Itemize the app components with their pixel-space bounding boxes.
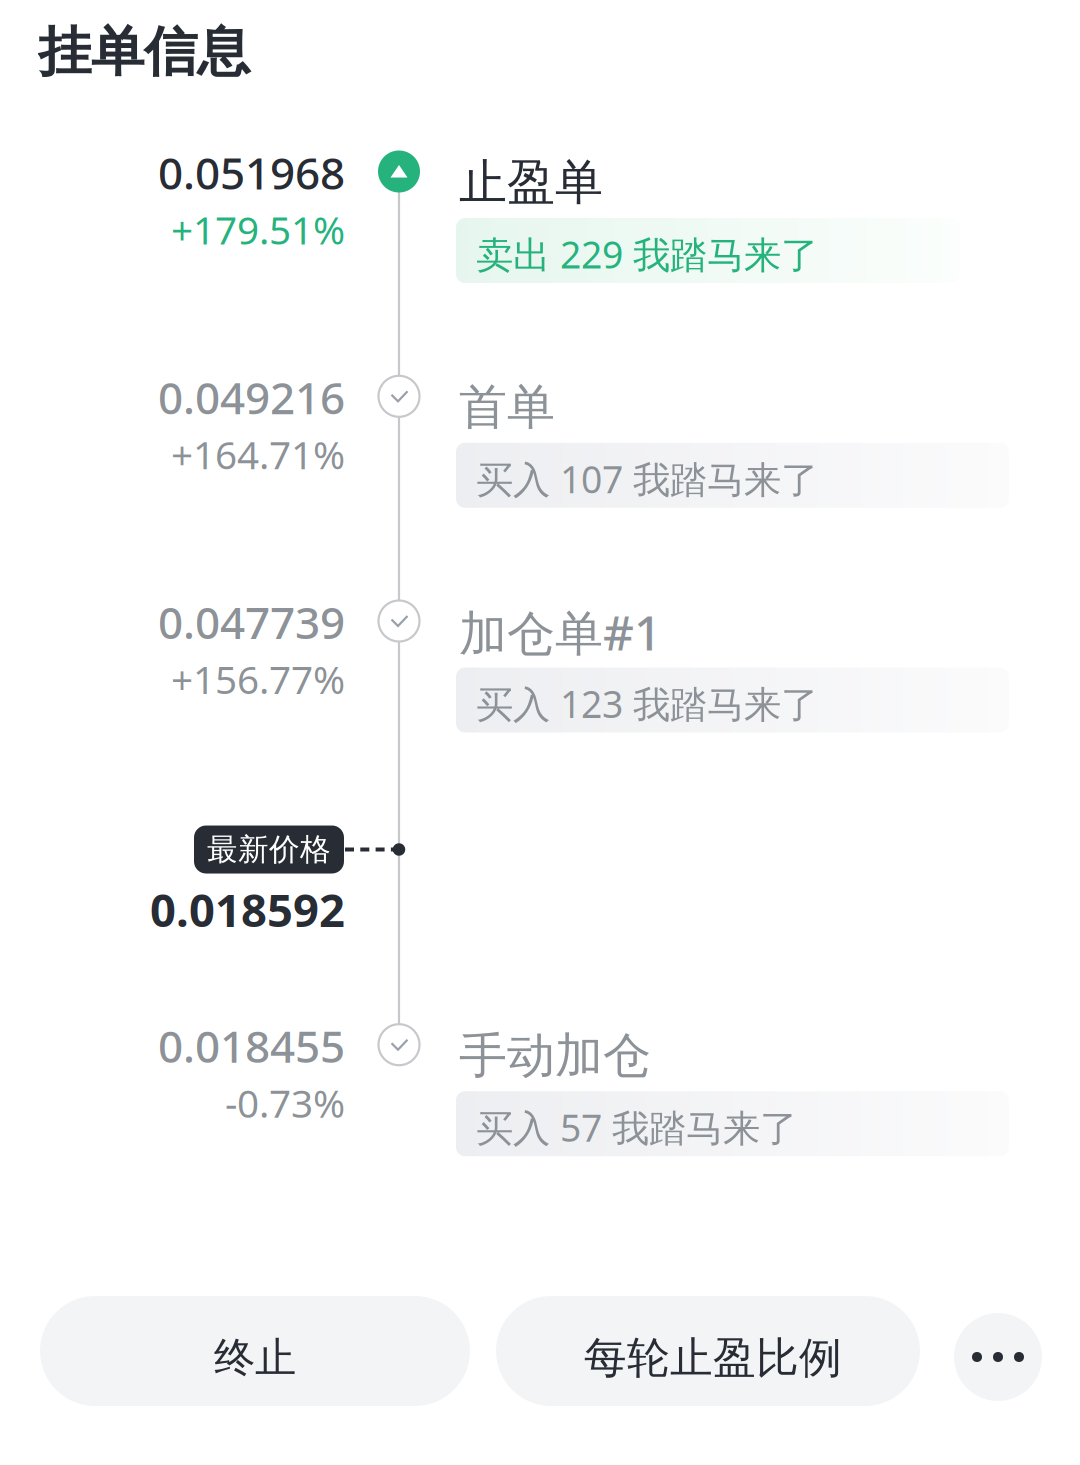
staticText: 止盈单 [459,153,603,212]
staticText: 买入 57 我踏马来了 [476,1102,797,1152]
staticText: 0.051968 [158,143,345,202]
button[interactable]: 更多选项 [954,1313,1042,1401]
staticText: 买入 107 我踏马来了 [476,454,818,504]
staticText: 0.018455 [158,1016,345,1075]
staticText: 0.047739 [158,593,345,651]
staticText: 0.049216 [158,368,345,426]
staticText: 首单 [459,378,555,437]
staticText: +179.51% [171,204,345,255]
staticText: 卖出 229 我踏马来了 [476,229,818,279]
staticText: 挂单信息 [38,19,250,85]
staticText: 手动加仓 [459,1026,651,1085]
staticText: 加仓单#1 [459,600,661,664]
staticText: +164.71% [171,429,345,480]
staticText: +156.77% [171,653,345,705]
staticText: 最新价格 [207,831,331,868]
staticText: 终止 [214,1333,296,1383]
staticText: 买入 123 我踏马来了 [476,679,818,728]
button[interactable]: 终止 [40,1296,470,1406]
staticText: -0.73% [225,1077,345,1128]
button[interactable]: 每轮止盈比例 [496,1296,920,1406]
staticText: 每轮止盈比例 [584,1332,842,1384]
staticText: 0.018592 [150,879,345,940]
